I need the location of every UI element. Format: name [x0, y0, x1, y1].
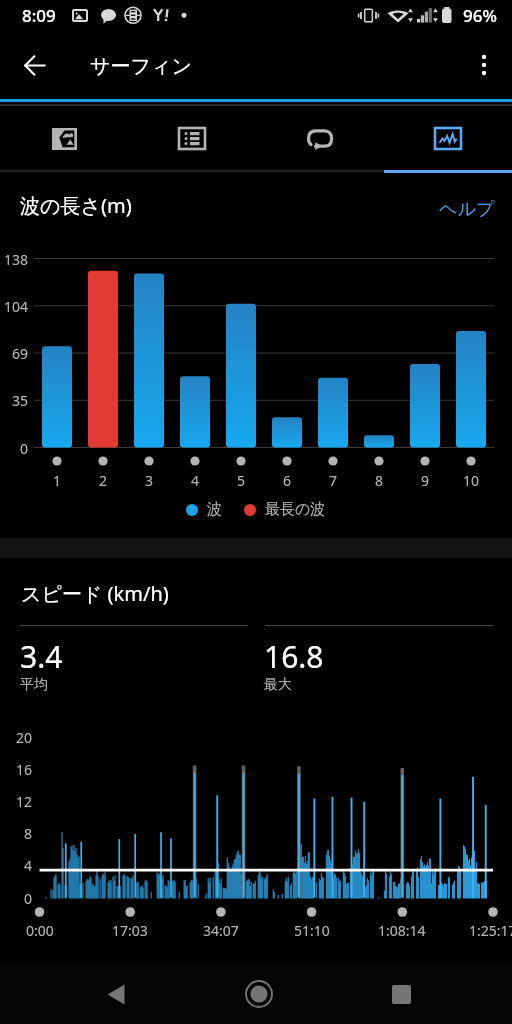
staticText: 7 [329, 471, 338, 490]
staticText: 16.8 [264, 636, 324, 677]
staticText: 104 [0, 297, 28, 316]
button[interactable]: Back [76, 963, 156, 1024]
staticText: 10 [463, 471, 480, 490]
staticText: 17:03 [112, 921, 148, 940]
staticText: 4 [0, 856, 32, 875]
staticText: ヘルプ [439, 198, 495, 221]
staticText: 8 [375, 471, 384, 490]
staticText: 0 [0, 439, 28, 458]
button[interactable]: List tab [128, 104, 256, 173]
button[interactable]: Laps tab [256, 104, 384, 173]
staticText: サーフィン [90, 54, 192, 79]
staticText: 1 [53, 471, 62, 490]
staticText: 16 [0, 760, 32, 779]
staticText: 6 [283, 471, 292, 490]
staticText: 34:07 [203, 921, 239, 940]
staticText: 3 [145, 471, 154, 490]
staticText: 5 [237, 471, 246, 490]
staticText: 20 [0, 728, 32, 747]
staticText: 96% [463, 4, 497, 27]
staticText: 3.4 [20, 636, 63, 677]
button[interactable]: Charts tab [384, 104, 512, 173]
staticText: 51:10 [294, 921, 330, 940]
staticText: 平均 [20, 676, 48, 694]
staticText: 69 [0, 344, 28, 363]
staticText: 4 [191, 471, 200, 490]
staticText: 2 [99, 471, 108, 490]
button[interactable]: ヘルプ [439, 198, 495, 221]
staticText: 0 [0, 889, 32, 908]
button[interactable]: Recent apps [361, 963, 441, 1024]
staticText: 1:25:17 [469, 921, 512, 940]
staticText: 波の長さ(m) [20, 192, 132, 219]
staticText: 1:08:14 [378, 921, 426, 940]
button[interactable]: More options [460, 41, 508, 89]
staticText: 12 [0, 792, 32, 811]
button[interactable]: Map tab [0, 104, 128, 173]
staticText: 8:09 [22, 4, 56, 27]
staticText: スピード (km/h) [21, 580, 169, 607]
staticText: 138 [0, 250, 28, 269]
staticText: 8 [0, 824, 32, 843]
staticText: 最大 [264, 676, 292, 694]
button[interactable]: Home [219, 963, 299, 1024]
staticText: 9 [421, 471, 430, 490]
staticText: 波 [207, 500, 222, 519]
button[interactable]: Back [11, 41, 59, 89]
staticText: 35 [0, 391, 28, 410]
staticText: 0:00 [26, 921, 54, 940]
staticText: 最長の波 [265, 500, 326, 519]
